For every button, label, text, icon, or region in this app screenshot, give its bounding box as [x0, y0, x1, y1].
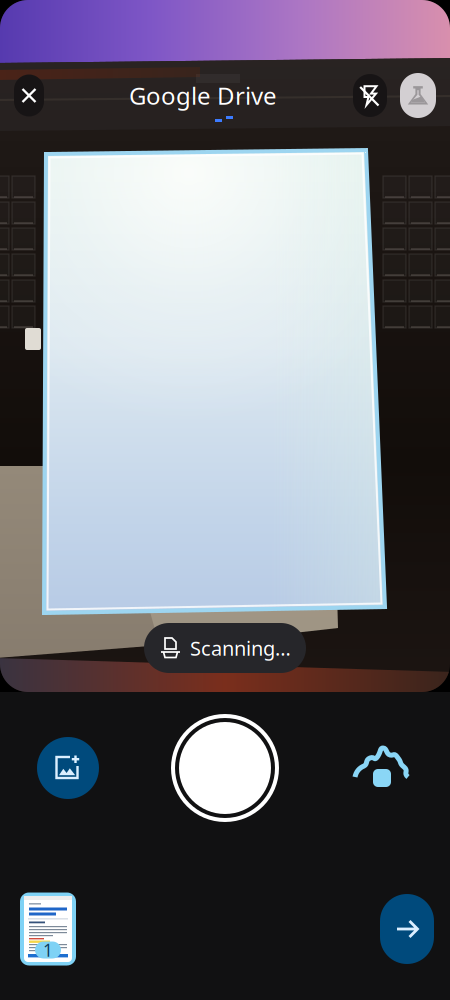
- staticText: Google Drive: [129, 80, 277, 111]
- staticText: Scanning…: [190, 635, 291, 661]
- button[interactable]: Scanned pages: [20, 892, 76, 965]
- button[interactable]: Auto capture: [352, 738, 414, 800]
- button[interactable]: Next: [380, 894, 434, 964]
- staticText: 1: [43, 938, 53, 961]
- button[interactable]: Close: [14, 74, 44, 116]
- button[interactable]: Import from photos: [37, 737, 99, 799]
- button[interactable]: Flash off: [353, 74, 387, 117]
- button[interactable]: Scan enhancements: [400, 73, 436, 118]
- button[interactable]: Capture: [171, 714, 279, 822]
